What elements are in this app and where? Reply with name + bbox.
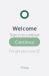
staticText: Welcome — [12, 25, 36, 32]
staticText: Forgot password? — [9, 48, 40, 54]
staticText: Sign in to continue — [9, 32, 39, 37]
staticText: Help — [20, 65, 28, 70]
staticText: Continue — [15, 39, 34, 44]
button[interactable]: Continue — [9, 37, 40, 46]
